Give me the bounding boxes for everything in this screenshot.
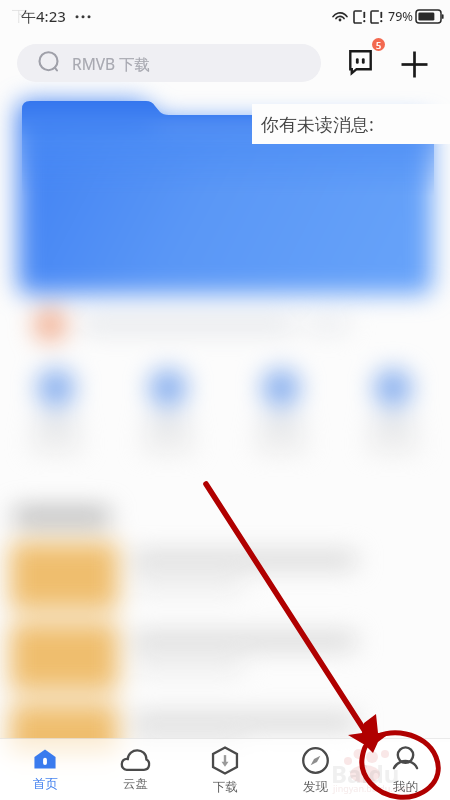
staticText: 我的: [393, 779, 418, 795]
button[interactable]: 下载: [180, 738, 270, 800]
button[interactable]: 发现: [270, 738, 360, 800]
staticText: 79%: [388, 8, 413, 25]
staticText: 下载: [213, 779, 238, 795]
staticText: 云盘: [123, 776, 148, 792]
staticText: 你有未读消息:: [261, 112, 374, 137]
button[interactable]: 云盘: [90, 738, 180, 800]
button[interactable]: 首页: [0, 738, 90, 800]
staticText: 午4:23: [21, 6, 66, 26]
staticText: 下: [12, 7, 27, 26]
button[interactable]: 你有未读消息:: [252, 104, 450, 144]
staticText: 5: [376, 39, 382, 51]
button[interactable]: RMVB 下载: [17, 44, 321, 82]
button[interactable]: Messages: [340, 42, 382, 84]
staticText: jingyan.baidu.com: [333, 782, 411, 794]
staticText: 发现: [303, 779, 328, 795]
staticText: Baidu: [331, 757, 400, 790]
staticText: RMVB 下载: [72, 53, 151, 74]
button[interactable]: Add: [394, 44, 434, 84]
staticText: 首页: [33, 776, 58, 792]
button[interactable]: 我的: [360, 738, 450, 800]
